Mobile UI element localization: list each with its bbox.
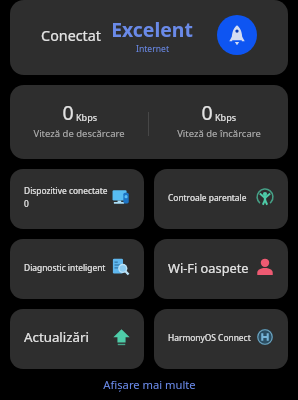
staticText: 0 (24, 198, 29, 209)
staticText: Viteză de încărcare (177, 127, 261, 140)
staticText: Excelent (111, 16, 193, 42)
button[interactable]: Actualizări (10, 309, 144, 369)
button[interactable]: Controale parentale (154, 169, 288, 229)
staticText: Dispozitive conectate (24, 185, 108, 196)
staticText: Actualizări (24, 328, 89, 346)
staticText: Kbps (215, 111, 236, 123)
staticText: Afișare mai multe (103, 377, 196, 392)
button[interactable]: Conectat (10, 0, 288, 75)
button[interactable]: Wi-Fi oaspete (154, 239, 288, 299)
staticText: Kbps (76, 111, 97, 123)
staticText: HarmonyOS Connect (168, 332, 251, 343)
staticText: Conectat (41, 26, 101, 45)
button[interactable]: HarmonyOS Connect (154, 309, 288, 369)
staticText: Wi-Fi oaspete (168, 259, 249, 276)
staticText: Diagnostic inteligent (24, 262, 106, 273)
button[interactable]: Diagnostic inteligent (10, 239, 144, 299)
button[interactable]: Dispozitive conectate (10, 169, 144, 229)
staticText: Controale parentale (168, 192, 247, 203)
staticText: 0 (62, 99, 74, 126)
button[interactable]: Boost speed (217, 15, 257, 55)
staticText: 0 (201, 99, 213, 126)
staticText: Viteză de descărcare (33, 127, 125, 140)
staticText: Internet (136, 43, 169, 55)
button[interactable]: Afișare mai multe (87, 372, 212, 397)
